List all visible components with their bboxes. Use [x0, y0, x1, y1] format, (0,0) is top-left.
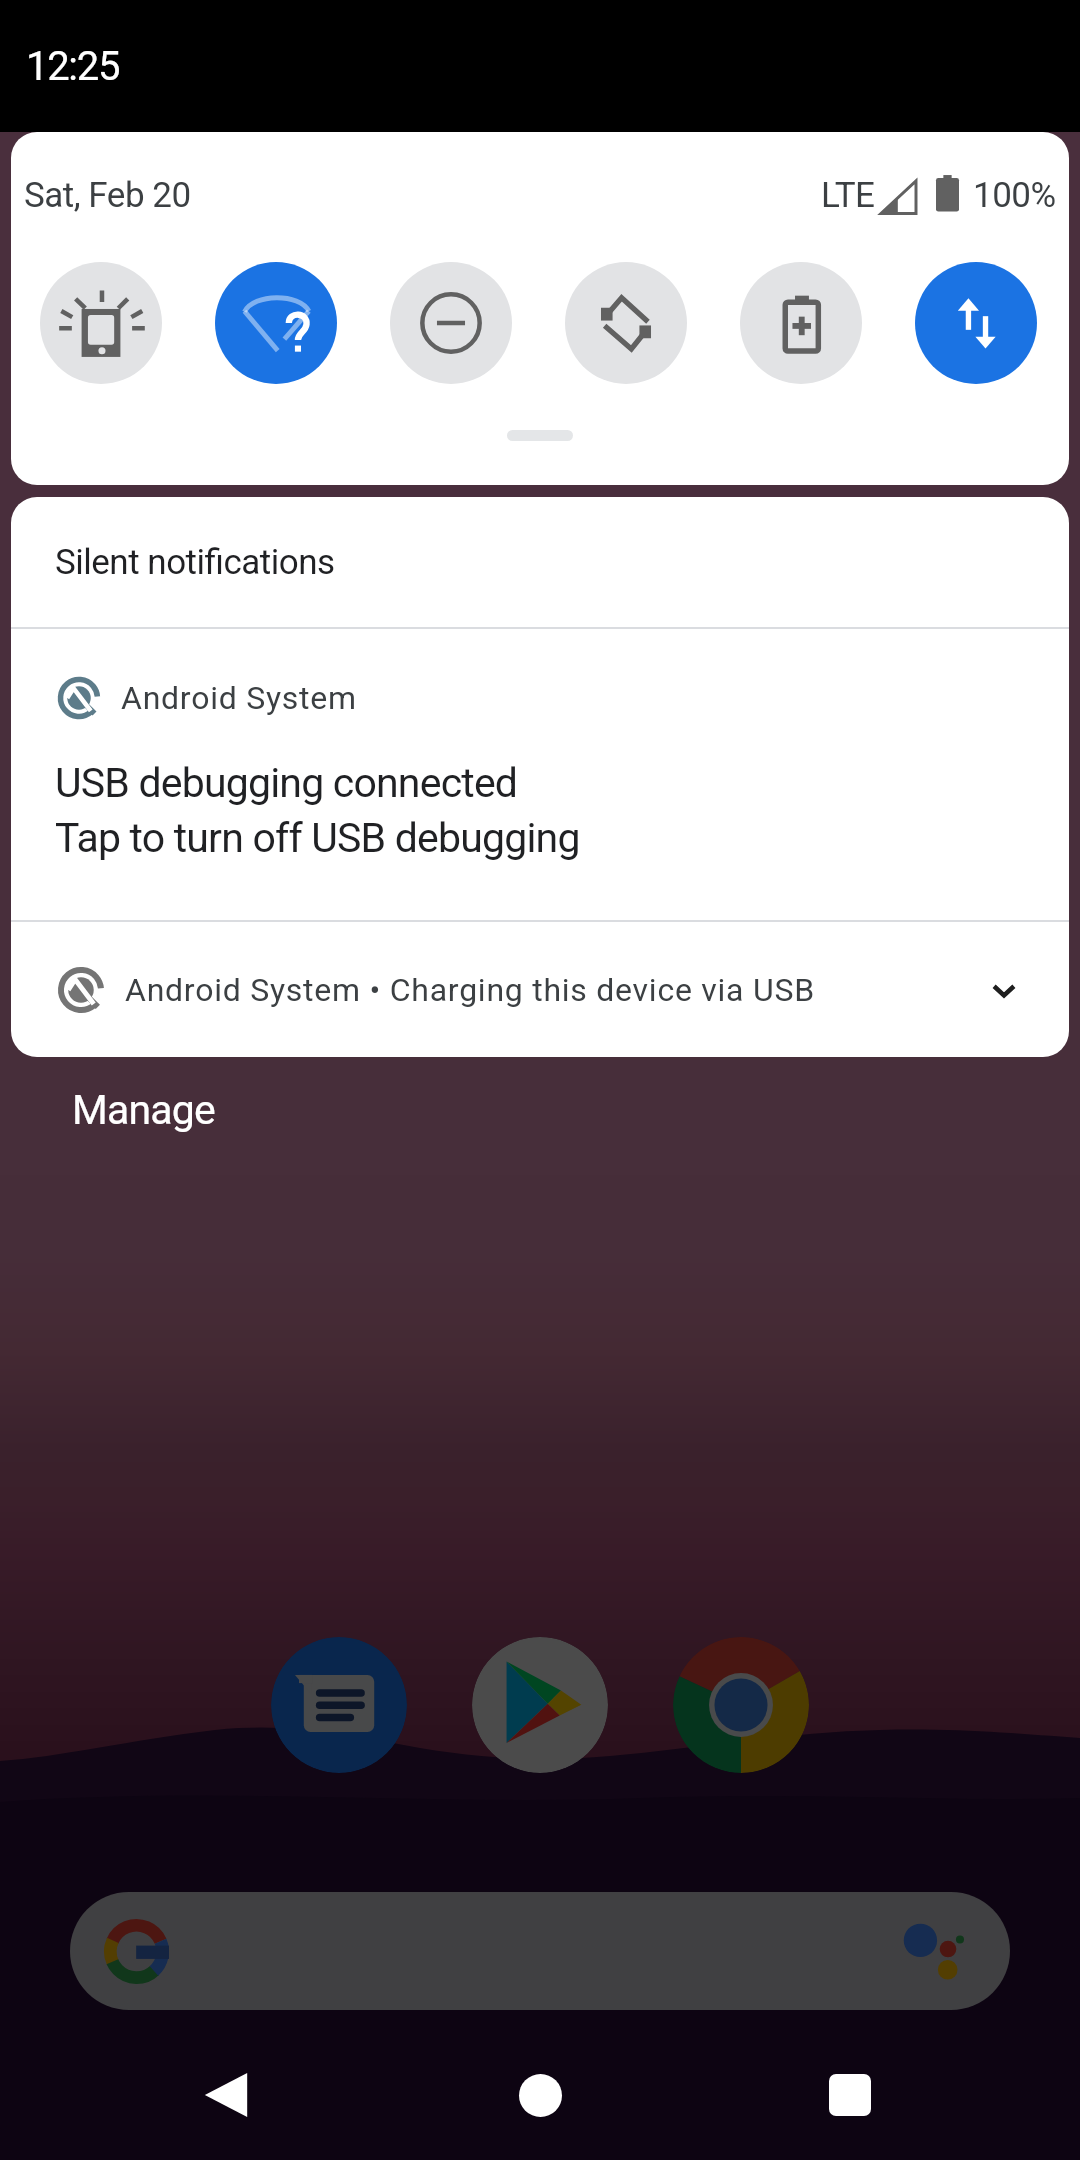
button[interactable]: Data saver — [915, 262, 1037, 384]
button[interactable]: Home — [484, 2039, 596, 2151]
button[interactable]: Auto rotate — [565, 262, 687, 384]
staticText: LTE — [821, 175, 875, 216]
button[interactable]: Messages — [271, 1637, 407, 1773]
button[interactable]: Battery saver — [740, 262, 862, 384]
button[interactable]: Play Store — [472, 1637, 608, 1773]
staticText: USB debugging connected — [55, 759, 518, 807]
button[interactable]: Android System — [11, 629, 1069, 920]
button[interactable]: Ringer mode — [40, 262, 162, 384]
staticText: 100% — [973, 175, 1056, 216]
button[interactable]: Recents — [794, 2039, 906, 2151]
button[interactable]: Chrome — [673, 1637, 809, 1773]
button[interactable]: Do not disturb — [390, 262, 512, 384]
staticText: Android System • Charging this device vi… — [125, 971, 815, 1009]
button[interactable]: Silent notifications — [11, 497, 1069, 627]
button[interactable]: Internet — [215, 262, 337, 384]
staticText: 12:25 — [26, 43, 120, 90]
button[interactable]: Search — [70, 1892, 1010, 2010]
button[interactable]: Manage — [72, 1086, 216, 1134]
staticText: Sat, Feb 20 — [24, 175, 191, 216]
button[interactable]: Back — [170, 2039, 282, 2151]
button[interactable]: Android System • Charging this device vi… — [11, 922, 1069, 1057]
staticText: Tap to turn off USB debugging — [55, 814, 580, 862]
staticText: Android System — [121, 679, 357, 717]
staticText: Silent notifications — [55, 542, 335, 583]
button[interactable]: Expand quick settings — [507, 430, 573, 441]
